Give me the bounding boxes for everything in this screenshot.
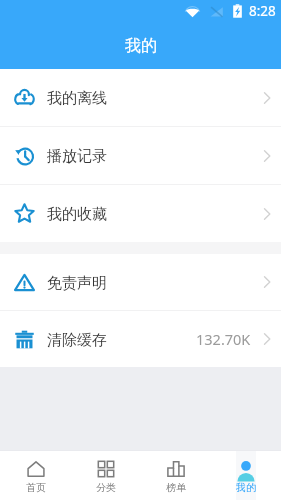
button[interactable]: 清除缓存: [0, 311, 281, 367]
button[interactable]: 播放记录: [0, 127, 281, 184]
staticText: 我的: [236, 481, 256, 494]
button[interactable]: 我的收藏: [0, 185, 281, 242]
button[interactable]: 免责声明: [0, 254, 281, 310]
staticText: 132.70K: [196, 329, 251, 349]
staticText: 榜单: [166, 481, 186, 494]
staticText: 分类: [96, 481, 116, 494]
staticText: 我的: [125, 36, 157, 56]
button[interactable]: 我的离线: [0, 69, 281, 126]
staticText: 我的离线: [47, 89, 107, 108]
button[interactable]: 我的: [211, 451, 281, 500]
staticText: 我的收藏: [47, 205, 107, 224]
staticText: 清除缓存: [47, 331, 107, 350]
button[interactable]: 分类: [71, 451, 141, 500]
staticText: 播放记录: [47, 147, 107, 166]
button[interactable]: 榜单: [141, 451, 211, 500]
staticText: 8:28: [249, 2, 276, 20]
staticText: 免责声明: [47, 274, 107, 293]
staticText: 首页: [26, 481, 46, 494]
button[interactable]: 首页: [0, 451, 71, 500]
